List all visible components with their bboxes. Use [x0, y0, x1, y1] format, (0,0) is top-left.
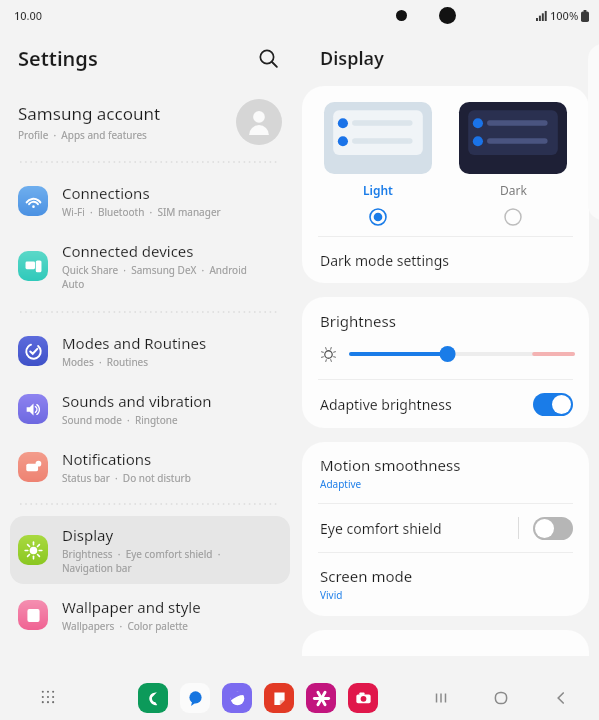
- button[interactable]: Phone: [138, 683, 168, 713]
- button[interactable]: Camera: [348, 683, 378, 713]
- button[interactable]: Toggle off: [533, 517, 573, 540]
- button[interactable]: Light: [318, 100, 438, 228]
- staticText: Brightness · Eye comfort shield · Naviga…: [62, 547, 221, 575]
- button[interactable]: Wallpaper and style: [10, 588, 290, 642]
- button[interactable]: Connections: [10, 174, 290, 228]
- button[interactable]: Toggle on: [533, 393, 573, 416]
- staticText: Adaptive brightness: [320, 395, 533, 414]
- button[interactable]: Display: [10, 516, 290, 584]
- staticText: Connections: [62, 183, 150, 203]
- staticText: Modes · Routines: [62, 355, 149, 369]
- staticText: Eye comfort shield: [320, 519, 518, 538]
- button[interactable]: Home: [487, 684, 515, 712]
- button[interactable]: Dark mode settings: [302, 237, 589, 283]
- staticText: Sound mode · Ringtone: [62, 413, 178, 427]
- button[interactable]: Messages: [180, 683, 210, 713]
- button[interactable]: Back: [547, 684, 575, 712]
- button[interactable]: Search: [248, 38, 288, 78]
- staticText: Vivid: [320, 588, 343, 602]
- button[interactable]: Dark: [453, 100, 573, 228]
- staticText: Wallpapers · Color palette: [62, 619, 188, 633]
- button[interactable]: Sounds and vibration: [10, 382, 290, 436]
- staticText: Display: [62, 525, 114, 545]
- staticText: Samsung account: [18, 102, 161, 125]
- staticText: Status bar · Do not disturb: [62, 471, 191, 485]
- button[interactable]: Motion smoothness: [302, 442, 589, 503]
- staticText: Wallpaper and style: [62, 597, 201, 617]
- button[interactable]: Recents: [427, 684, 455, 712]
- staticText: Sounds and vibration: [62, 391, 212, 411]
- staticText: Quick Share · Samsung DeX · Android Auto: [62, 263, 247, 291]
- staticText: Profile · Apps and features: [18, 128, 147, 142]
- button[interactable]: Modes and Routines: [10, 324, 290, 378]
- staticText: Wi-Fi · Bluetooth · SIM manager: [62, 205, 221, 219]
- button[interactable]: Apps: [34, 683, 64, 713]
- button[interactable]: Eye comfort shield: [302, 504, 589, 552]
- staticText: Dark mode settings: [320, 251, 449, 270]
- staticText: Notifications: [62, 449, 152, 469]
- staticText: Dark: [500, 182, 527, 198]
- staticText: Display: [320, 46, 384, 71]
- button[interactable]: Notes: [264, 683, 294, 713]
- staticText: Brightness: [320, 311, 396, 331]
- staticText: Adaptive: [320, 477, 362, 491]
- button[interactable]: Gallery: [306, 683, 336, 713]
- button[interactable]: Adaptive brightness: [302, 380, 589, 428]
- staticText: Settings: [18, 45, 98, 72]
- button[interactable]: Samsung account: [0, 86, 300, 158]
- button[interactable]: Connected devices: [10, 232, 290, 300]
- staticText: Connected devices: [62, 241, 194, 261]
- staticText: Modes and Routines: [62, 333, 207, 353]
- staticText: Light: [363, 182, 393, 198]
- button[interactable]: Notifications: [10, 440, 290, 494]
- button[interactable]: Internet: [222, 683, 252, 713]
- button[interactable]: Screen mode: [302, 553, 589, 616]
- staticText: 100%: [550, 8, 579, 23]
- staticText: Screen mode: [320, 566, 413, 586]
- staticText: 10.00: [14, 8, 43, 23]
- staticText: Motion smoothness: [320, 455, 461, 475]
